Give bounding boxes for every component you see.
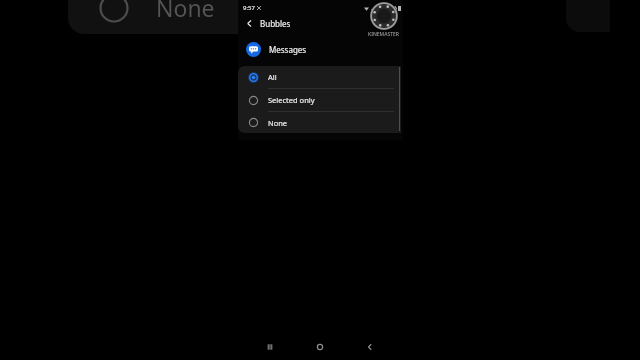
staticText: KINEMASTER xyxy=(368,31,399,38)
button[interactable]: Selected only xyxy=(238,89,401,111)
button[interactable]: Messages xyxy=(238,37,403,61)
staticText: 52% xyxy=(385,4,397,12)
staticText: None xyxy=(156,0,215,23)
staticText: Selected only xyxy=(268,95,315,105)
button[interactable]: Back xyxy=(345,338,395,356)
button[interactable]: None xyxy=(238,112,401,133)
staticText: Messages xyxy=(269,44,307,55)
button[interactable]: All xyxy=(238,66,401,88)
staticText: 9:57 xyxy=(243,4,255,12)
button[interactable]: Back xyxy=(243,17,256,30)
staticText: Bubbles xyxy=(260,18,291,29)
button[interactable]: Home xyxy=(295,338,345,356)
button[interactable]: Recents xyxy=(245,338,295,356)
staticText: None xyxy=(268,118,288,128)
staticText: All xyxy=(268,72,277,82)
